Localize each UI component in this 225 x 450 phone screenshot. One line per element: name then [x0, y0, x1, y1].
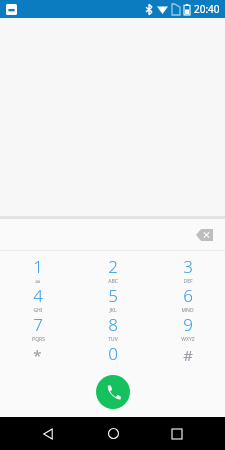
button[interactable]: 8 — [75, 313, 150, 342]
button[interactable]: 2 — [75, 255, 150, 284]
button[interactable]: 6 — [150, 284, 225, 313]
staticText: TUV — [108, 336, 118, 342]
staticText: DEF — [183, 278, 193, 284]
button[interactable]: Call — [96, 375, 130, 409]
button[interactable]: Home — [96, 417, 130, 450]
button[interactable]: Back — [31, 417, 65, 450]
button[interactable]: Recents — [160, 417, 194, 450]
button[interactable]: 3 — [150, 255, 225, 284]
button[interactable]: * — [0, 342, 75, 367]
staticText: 4 — [33, 284, 43, 307]
button[interactable]: 0 — [75, 342, 150, 367]
staticText: 0 — [108, 342, 118, 365]
staticText: PQRS — [32, 336, 45, 342]
button[interactable]: 7 — [0, 313, 75, 342]
staticText: 7 — [33, 313, 43, 336]
staticText: WXYZ — [181, 336, 195, 342]
staticText: 2 — [108, 255, 118, 278]
staticText: GHI — [33, 307, 43, 313]
staticText: ∞ — [35, 278, 41, 284]
staticText: 3 — [183, 255, 193, 278]
button[interactable]: 5 — [75, 284, 150, 313]
button[interactable]: 4 — [0, 284, 75, 313]
staticText: 5 — [108, 284, 118, 307]
staticText: MNO — [181, 307, 194, 313]
staticText: # — [183, 345, 193, 365]
staticText: ABC — [108, 278, 118, 284]
button[interactable]: 1 — [0, 255, 75, 284]
button[interactable]: 9 — [150, 313, 225, 342]
button[interactable]: # — [150, 342, 225, 367]
staticText: 1 — [33, 255, 43, 278]
staticText: 6 — [183, 284, 193, 307]
staticText: 9 — [183, 313, 193, 336]
staticText: 20:40 — [194, 2, 220, 16]
button[interactable]: Backspace — [192, 223, 216, 247]
staticText: JKL — [109, 307, 117, 313]
staticText: 8 — [108, 313, 118, 336]
staticText: * — [33, 345, 42, 365]
